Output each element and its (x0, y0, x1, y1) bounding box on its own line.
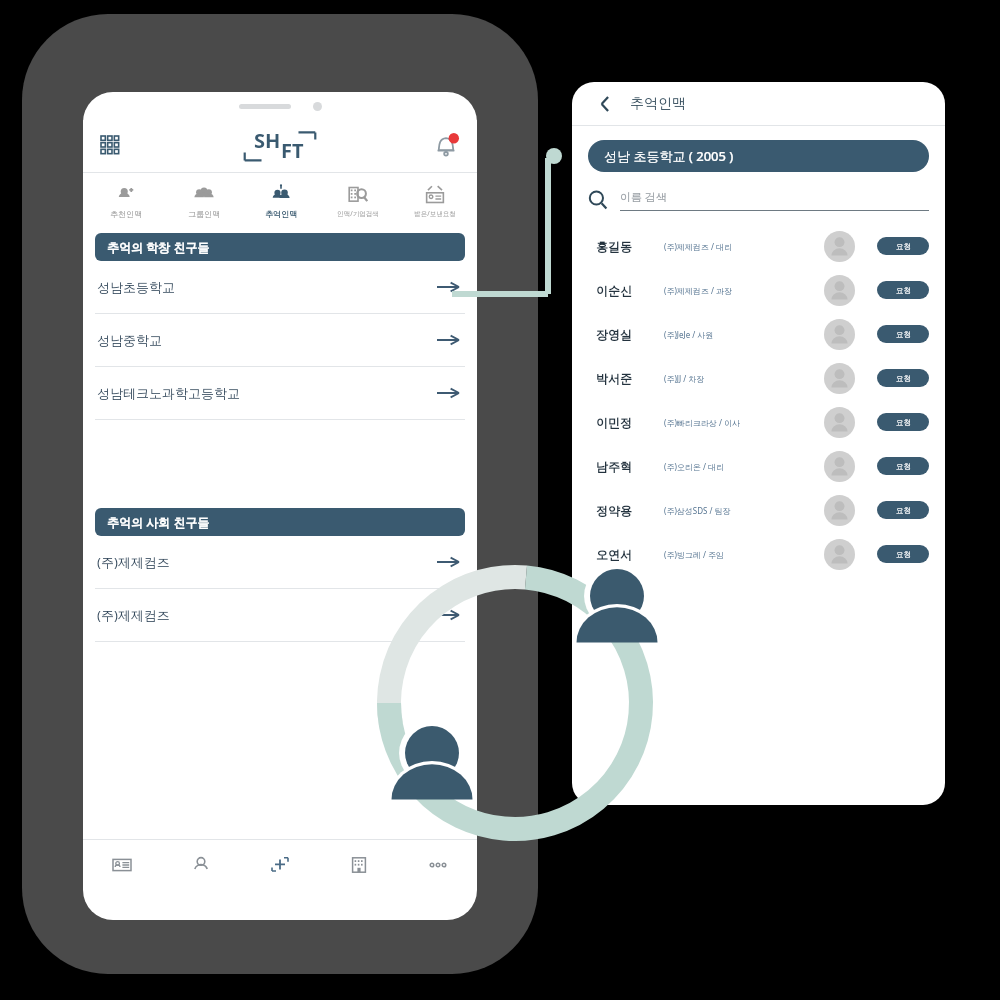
button[interactable]: Company (319, 840, 398, 890)
staticText: 추억의 사회 친구들 (107, 514, 210, 530)
staticText: 오연서 (596, 547, 664, 562)
button[interactable]: 받은/보낸요청 (396, 173, 473, 229)
button[interactable]: 장영실 (588, 312, 929, 356)
button[interactable]: 이순신 (588, 268, 929, 312)
button[interactable]: 박서준 (588, 356, 929, 400)
staticText: (주)제제컴즈 (97, 553, 170, 571)
button[interactable]: Contacts (83, 840, 161, 890)
button[interactable]: 추천인맥 (87, 173, 165, 229)
button[interactable]: 추억의 학창 친구들 (95, 233, 465, 261)
button[interactable]: 요청 (877, 545, 929, 563)
button[interactable]: 추억인맥 (242, 173, 319, 229)
staticText: 이름 검색 (620, 189, 667, 204)
staticText: (주)빠리크라상 / 이사 (664, 417, 824, 428)
staticText: 요청 (896, 242, 911, 251)
staticText: 요청 (896, 374, 911, 383)
button[interactable]: 요청 (877, 237, 929, 255)
button[interactable]: 성남 초등학교 ( 2005 ) (588, 140, 929, 172)
staticText: (주)JJ / 차장 (664, 373, 824, 384)
staticText: 추억의 학창 친구들 (107, 239, 210, 255)
staticText: 추억인맥 (265, 209, 297, 219)
staticText: 요청 (896, 462, 911, 471)
staticText: FT (281, 137, 304, 164)
button[interactable]: 정약용 (588, 488, 929, 532)
staticText: 성남 초등학교 ( 2005 ) (604, 147, 734, 165)
staticText: 추억인맥 (630, 95, 686, 113)
staticText: SH (254, 127, 281, 154)
button[interactable]: Add (240, 840, 319, 890)
staticText: 요청 (896, 330, 911, 339)
staticText: 정약용 (596, 503, 664, 518)
button[interactable]: 성남초등학교 (83, 261, 477, 314)
button[interactable]: 요청 (877, 325, 929, 343)
staticText: (주)빙그레 / 주임 (664, 549, 824, 560)
staticText: 요청 (896, 506, 911, 515)
staticText: (주)제제컴즈 (97, 606, 170, 624)
staticText: 요청 (896, 418, 911, 427)
staticText: 박서준 (596, 371, 664, 386)
staticText: 장영실 (596, 327, 664, 342)
staticText: 이순신 (596, 283, 664, 298)
button[interactable]: More (398, 840, 477, 890)
button[interactable]: Back (592, 91, 618, 117)
staticText: (주)제제컴즈 / 대리 (664, 241, 824, 252)
staticText: (주)JeJe / 사원 (664, 329, 824, 340)
button[interactable]: 성남테크노과학고등학교 (83, 367, 477, 420)
staticText: 받은/보낸요청 (414, 209, 456, 218)
button[interactable]: 요청 (877, 281, 929, 299)
button[interactable]: 홍길동 (588, 224, 929, 268)
button[interactable]: 요청 (877, 457, 929, 475)
button[interactable]: 인맥/기업검색 (319, 173, 396, 229)
button[interactable]: 요청 (877, 501, 929, 519)
button[interactable]: 이민정 (588, 400, 929, 444)
staticText: 성남중학교 (97, 332, 162, 348)
button[interactable]: Profile (161, 840, 240, 890)
staticText: 성남테크노과학고등학교 (97, 385, 240, 401)
staticText: 그룹인맥 (188, 209, 220, 219)
staticText: 인맥/기업검색 (337, 209, 379, 218)
staticText: 추천인맥 (110, 209, 142, 219)
staticText: 성남초등학교 (97, 279, 175, 295)
staticText: (주)제제컴즈 / 과장 (664, 285, 824, 296)
button[interactable]: 추억의 사회 친구들 (95, 508, 465, 536)
staticText: 이민정 (596, 415, 664, 430)
staticText: 남주혁 (596, 459, 664, 474)
staticText: 요청 (896, 286, 911, 295)
button[interactable]: 성남중학교 (83, 314, 477, 367)
staticText: 홍길동 (596, 239, 664, 254)
button[interactable]: (주)제제컴즈 (83, 536, 477, 589)
button[interactable]: 남주혁 (588, 444, 929, 488)
button[interactable]: (주)제제컴즈 (83, 589, 477, 642)
button[interactable]: 오연서 (588, 532, 929, 576)
button[interactable]: 요청 (877, 413, 929, 431)
button[interactable]: 그룹인맥 (165, 173, 242, 229)
staticText: (주)삼성SDS / 팀장 (664, 505, 824, 516)
button[interactable]: 이름 검색 (588, 184, 929, 216)
button[interactable]: Apps (95, 130, 127, 162)
staticText: 요청 (896, 550, 911, 559)
button[interactable]: 요청 (877, 369, 929, 387)
staticText: (주)오리온 / 대리 (664, 461, 824, 472)
button[interactable]: Notifications (429, 129, 463, 163)
